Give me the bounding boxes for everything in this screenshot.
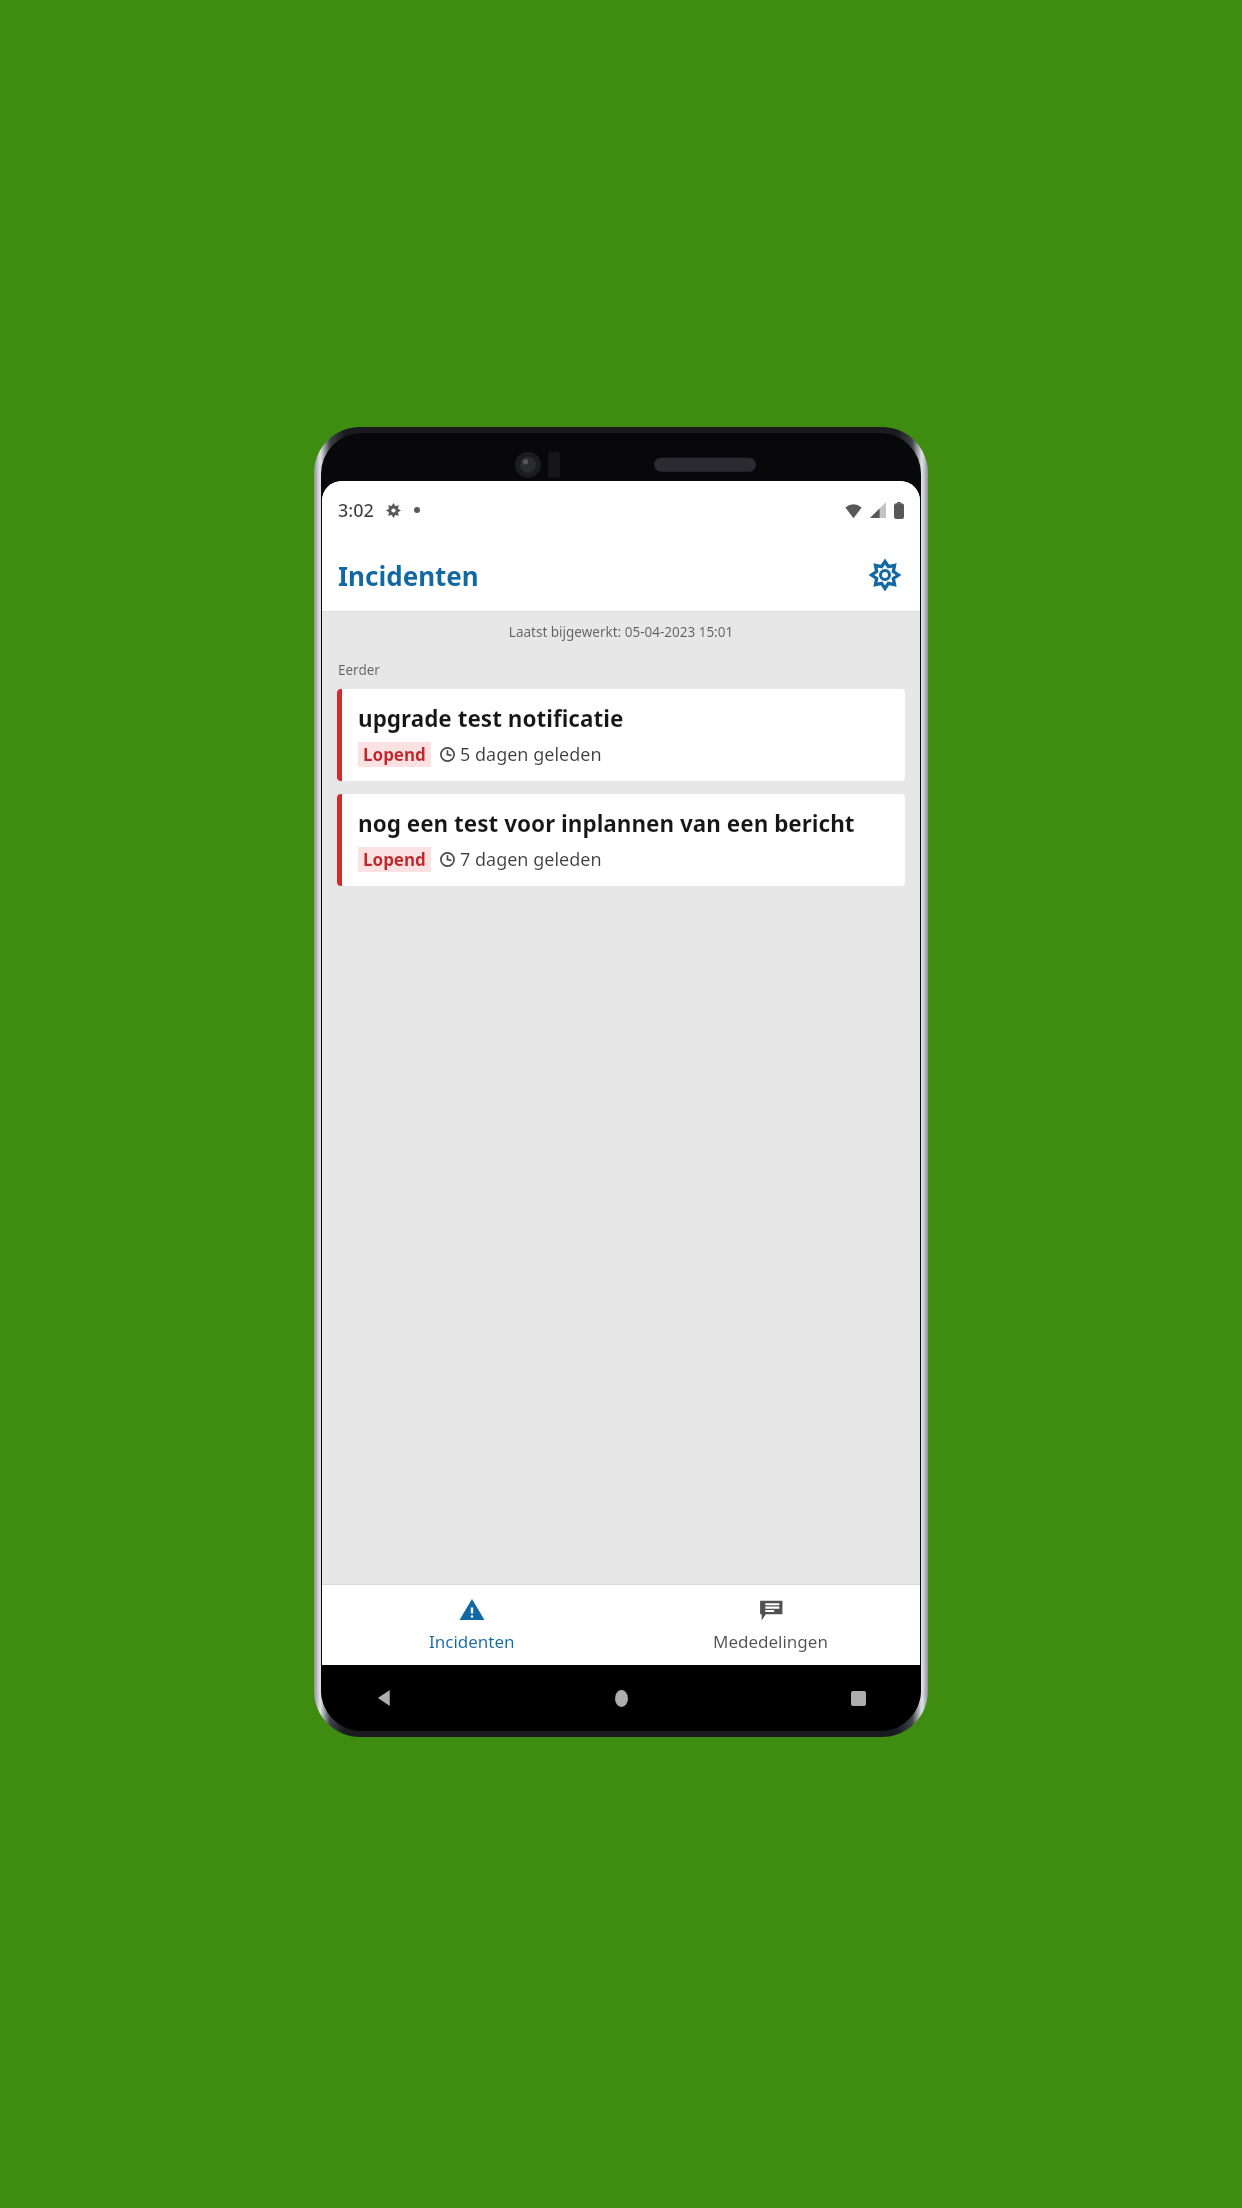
staticText: 5 dagen geleden — [460, 742, 602, 767]
button[interactable]: Recent apps — [835, 1675, 881, 1721]
staticText: Lopend — [363, 848, 426, 871]
button[interactable]: Mededelingen — [621, 1585, 920, 1665]
staticText: 3:02 — [338, 498, 374, 523]
staticText: Incidenten — [429, 1630, 515, 1653]
staticText: nog een test voor inplannen van een beri… — [358, 808, 855, 839]
staticText: 7 dagen geleden — [460, 847, 602, 872]
button[interactable]: nog een test voor inplannen van een beri… — [337, 794, 905, 886]
staticText: Eerder — [338, 661, 380, 679]
button[interactable]: upgrade test notificatie — [337, 689, 905, 781]
button[interactable]: Back — [361, 1675, 407, 1721]
button[interactable]: Home — [598, 1675, 644, 1721]
button[interactable]: Incidenten — [322, 1585, 621, 1665]
staticText: Incidenten — [338, 558, 479, 593]
staticText: Lopend — [363, 743, 426, 766]
staticText: upgrade test notificatie — [358, 703, 624, 734]
button[interactable]: Settings — [862, 552, 908, 598]
staticText: Mededelingen — [713, 1630, 828, 1653]
staticText: Laatst bijgewerkt: 05-04-2023 15:01 — [322, 623, 920, 641]
